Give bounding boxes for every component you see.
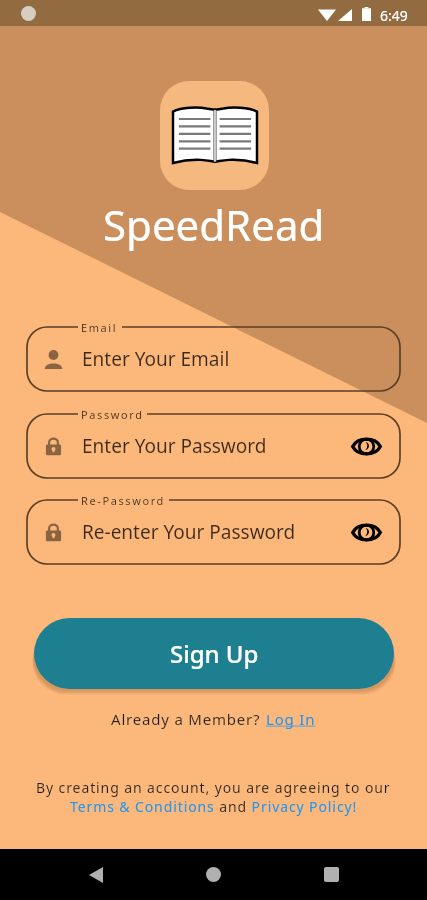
button[interactable]: Back	[69, 849, 124, 900]
staticText: Already a Member?	[111, 709, 266, 729]
staticText: Re-Password	[81, 493, 165, 508]
button[interactable]: Recent apps	[304, 849, 359, 900]
staticText: Log In	[266, 709, 316, 729]
button[interactable]: Log In	[266, 709, 316, 729]
staticText: SpeedRead	[103, 196, 325, 253]
button[interactable]: Sign Up	[34, 618, 394, 689]
button[interactable]: Toggle password visibility	[349, 515, 383, 549]
button[interactable]: Terms & Conditions and Privacy Policy!	[70, 797, 358, 816]
staticText: Password	[81, 407, 144, 422]
staticText: Re-enter Your Password	[82, 519, 296, 545]
staticText: 6:49	[380, 6, 408, 25]
staticText: Sign Up	[170, 637, 259, 670]
staticText: By creating an account, you are agreeing…	[36, 778, 391, 797]
staticText: Email	[81, 320, 118, 335]
staticText: Enter Your Email	[82, 346, 230, 372]
button[interactable]: Home	[186, 849, 241, 900]
button[interactable]: Toggle password visibility	[349, 429, 383, 463]
staticText: Terms & Conditions and Privacy Policy!	[70, 797, 358, 816]
staticText: Enter Your Password	[82, 433, 267, 459]
